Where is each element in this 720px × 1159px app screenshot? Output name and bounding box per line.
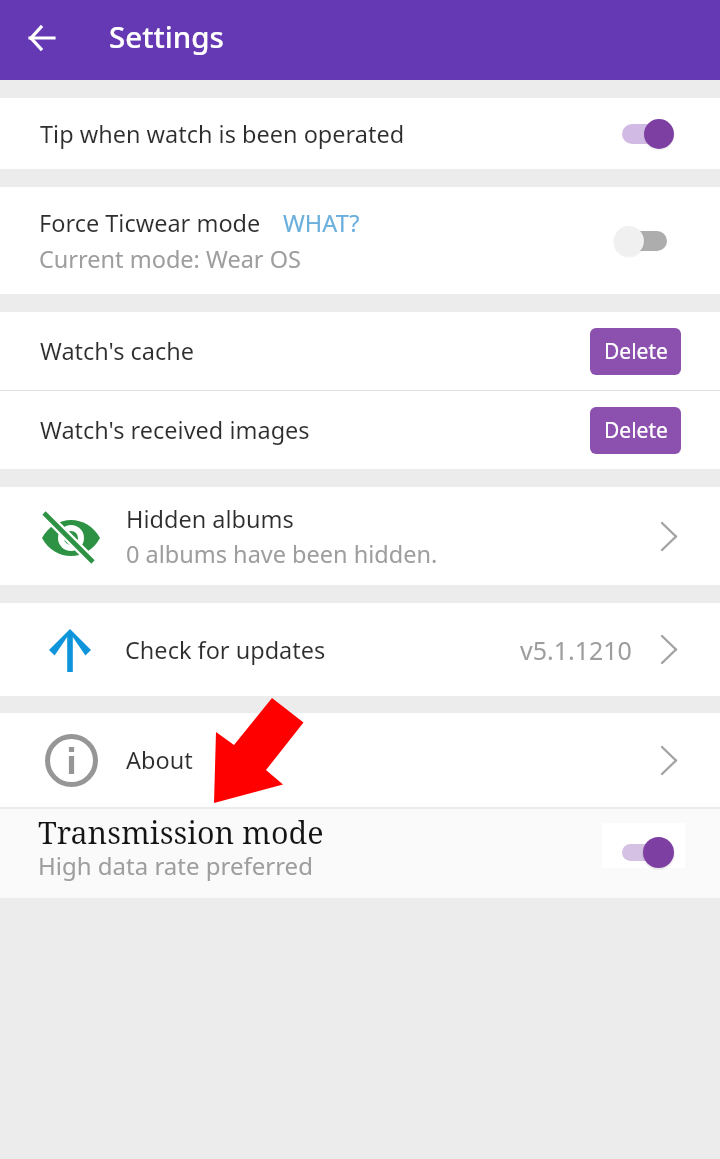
staticText: About xyxy=(126,744,193,776)
staticText: v5.1.1210 xyxy=(520,633,632,667)
button[interactable]: Toggle tip when watch is operated xyxy=(614,114,674,154)
button[interactable]: Force Ticwear mode xyxy=(0,187,720,294)
staticText: Transmission mode xyxy=(38,811,324,853)
staticText: Watch's received images xyxy=(40,414,310,446)
button[interactable]: Toggle force Ticwear mode xyxy=(614,221,674,261)
button[interactable]: Back xyxy=(12,8,72,68)
button[interactable]: Tip when watch is been operated xyxy=(0,98,720,169)
staticText: 0 albums have been hidden. xyxy=(126,538,438,570)
staticText: Current mode: Wear OS xyxy=(39,243,301,275)
staticText: Watch's cache xyxy=(40,335,195,367)
staticText: Settings xyxy=(109,16,224,56)
staticText: Delete xyxy=(604,337,668,366)
staticText: Check for updates xyxy=(125,634,326,666)
staticText: Force Ticwear mode xyxy=(39,207,261,239)
button[interactable]: About xyxy=(0,713,720,807)
button[interactable]: Check for updates xyxy=(0,603,720,696)
button[interactable]: Delete xyxy=(590,407,681,454)
button[interactable]: Transmission mode xyxy=(0,807,720,898)
button[interactable]: Watch's received images xyxy=(0,391,720,469)
button[interactable]: Watch's cache xyxy=(0,312,720,390)
button[interactable]: Delete xyxy=(590,328,681,375)
staticText: High data rate preferred xyxy=(38,849,313,882)
staticText: Delete xyxy=(604,416,668,445)
staticText: Tip when watch is been operated xyxy=(40,118,405,150)
staticText: Hidden albums xyxy=(126,503,294,535)
staticText: WHAT? xyxy=(283,207,360,239)
button[interactable]: Hidden albums xyxy=(0,487,720,585)
button[interactable]: Toggle transmission mode xyxy=(602,830,685,875)
